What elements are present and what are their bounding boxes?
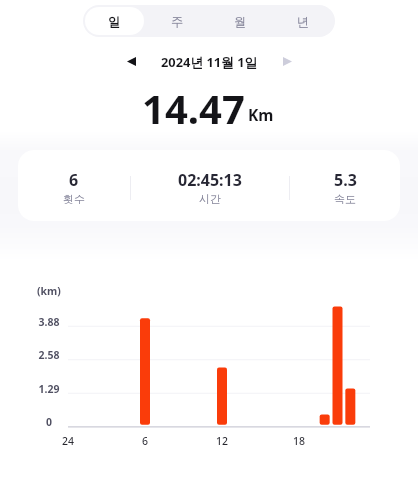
staticText: 일 (108, 14, 121, 29)
button[interactable]: Next day (258, 50, 292, 72)
staticText: 년 (297, 14, 310, 29)
staticText: 속도 (334, 192, 356, 206)
button[interactable]: Previous day (127, 50, 161, 72)
button[interactable]: 6 (18, 150, 130, 221)
staticText: 14.47 (142, 81, 245, 135)
staticText: 3.88 (24, 315, 74, 329)
staticText: 월 (234, 14, 247, 29)
staticText: 횟수 (63, 192, 85, 206)
staticText: 주 (171, 14, 184, 29)
staticText: 02:45:13 (178, 169, 242, 191)
staticText: 5.3 (334, 169, 357, 191)
staticText: 6 (69, 169, 79, 191)
button[interactable]: 02:45:13 (131, 150, 289, 221)
staticText: (km) (37, 284, 61, 298)
staticText: 24 (53, 434, 83, 448)
staticText: 6 (130, 434, 160, 448)
button[interactable]: 년 (274, 7, 333, 35)
staticText: 시간 (199, 192, 221, 206)
button[interactable]: 주 (148, 7, 207, 35)
staticText: 2024년 11월 1일 (161, 53, 258, 70)
staticText: 1.29 (24, 382, 74, 396)
button[interactable]: 5.3 (290, 150, 400, 221)
staticText: 2.58 (24, 348, 74, 362)
staticText: 18 (284, 434, 314, 448)
button[interactable]: 월 (211, 7, 270, 35)
staticText: 0 (24, 415, 74, 429)
staticText: 12 (207, 434, 237, 448)
button[interactable]: 일 (85, 7, 144, 35)
staticText: Km (248, 104, 274, 125)
